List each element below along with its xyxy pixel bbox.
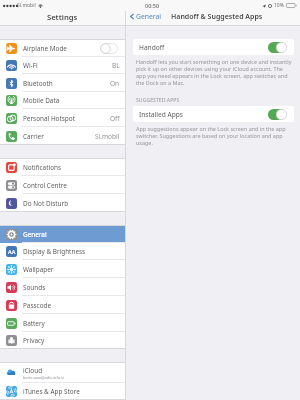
button[interactable]: Wi-Fi	[0, 57, 125, 74]
button[interactable]: Privacy	[0, 332, 125, 349]
button[interactable]: Personal Hotspot	[0, 109, 125, 127]
button[interactable]: On	[268, 109, 288, 120]
staticText: Privacy	[23, 336, 45, 345]
staticText: Handoff	[139, 43, 165, 52]
button[interactable]: General	[0, 225, 125, 243]
button[interactable]: Mobile Data	[0, 92, 125, 109]
staticText: Installed Apps	[139, 110, 183, 119]
staticText: AA	[8, 248, 16, 256]
button[interactable]: Handoff	[133, 39, 294, 55]
staticText: boris.save@odis-info.si	[23, 375, 64, 380]
staticText: Airplane Mode	[23, 44, 67, 53]
staticText: App suggestions appear on the Lock scree…	[136, 125, 294, 146]
staticText: Handoff & Suggested Apps	[171, 12, 263, 22]
staticText: Mobile Data	[23, 96, 60, 105]
button[interactable]: Installed Apps	[133, 106, 294, 122]
button[interactable]: Notifications	[0, 158, 125, 176]
staticText: Passcode	[23, 301, 52, 310]
staticText: General	[136, 12, 162, 21]
staticText: Battery	[23, 319, 45, 328]
button[interactable]: Battery	[0, 314, 125, 332]
staticText: Display & Brightness	[23, 247, 86, 256]
staticText: Wallpaper	[23, 265, 54, 274]
button[interactable]: Bluetooth	[0, 74, 125, 92]
staticText: General	[23, 230, 47, 239]
staticText: Sounds	[23, 283, 46, 292]
staticText: Carrier	[23, 132, 44, 141]
staticText: Off	[110, 114, 120, 123]
staticText: Control Centre	[23, 181, 67, 190]
button[interactable]: Sounds	[0, 278, 125, 296]
button[interactable]: Carrier	[0, 127, 125, 145]
staticText: Bluetooth	[23, 79, 53, 88]
button[interactable]: Airplane Mode	[0, 39, 125, 57]
staticText: Personal Hotspot	[23, 114, 75, 123]
button[interactable]: Control Centre	[0, 176, 125, 194]
staticText: 10%	[274, 2, 284, 9]
button[interactable]: Do Not Disturb	[0, 194, 125, 212]
button[interactable]: Wallpaper	[0, 260, 125, 278]
button[interactable]: On	[268, 42, 288, 53]
staticText: Wi-Fi	[23, 61, 38, 70]
staticText: 00:50	[145, 2, 160, 9]
staticText: Do Not Disturb	[23, 199, 69, 208]
staticText: SUGGESTED APPS	[136, 96, 180, 103]
staticText: Handoff lets you start something on one …	[136, 58, 294, 86]
staticText: Notifications	[23, 163, 62, 172]
staticText: BL	[112, 61, 120, 70]
staticText: iCloud	[23, 366, 43, 375]
button[interactable]: Off	[100, 43, 120, 54]
staticText: iTunes & App Store	[23, 387, 80, 396]
button[interactable]: AA	[0, 243, 125, 260]
button[interactable]: Passcode	[0, 296, 125, 314]
button[interactable]: iTunes & App Store	[0, 383, 125, 400]
button[interactable]: General	[126, 11, 165, 22]
staticText: On	[110, 79, 120, 88]
staticText: Si.mobil	[95, 132, 120, 141]
staticText: Sl.mobil	[17, 2, 36, 9]
button[interactable]: iCloud	[0, 362, 125, 383]
staticText: Settings	[47, 12, 78, 22]
